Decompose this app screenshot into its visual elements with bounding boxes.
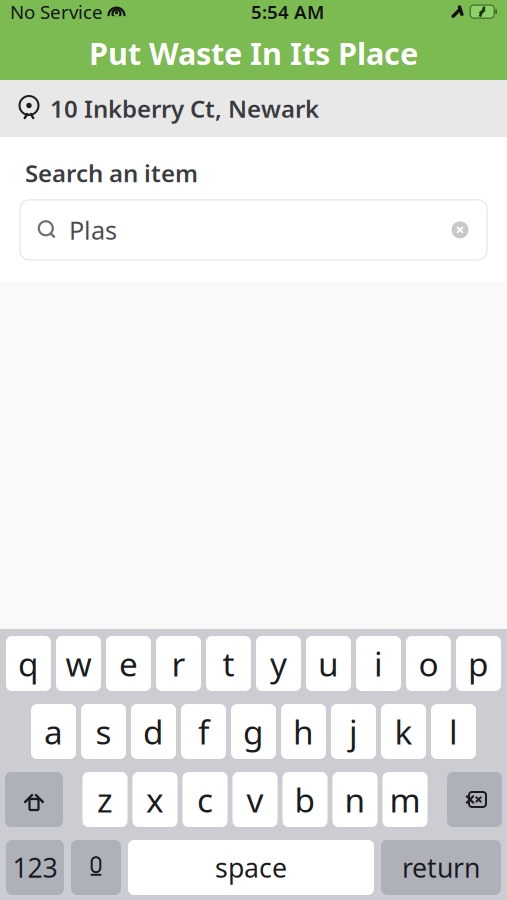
staticText: i — [374, 641, 383, 686]
button[interactable]: space — [128, 840, 374, 895]
staticText: c — [197, 777, 213, 822]
button[interactable]: s — [81, 704, 126, 759]
button[interactable]: n — [332, 772, 377, 827]
staticText: v — [246, 777, 263, 822]
staticText: w — [65, 641, 91, 686]
staticText: b — [294, 777, 315, 822]
staticText: g — [243, 709, 264, 754]
staticText: Plas — [69, 213, 117, 247]
staticText: j — [349, 709, 358, 754]
button[interactable]: Dictate — [71, 840, 121, 895]
staticText: No Service — [10, 0, 103, 24]
staticText: 5:54 AM — [251, 0, 324, 24]
button[interactable]: Plas — [20, 200, 487, 260]
button[interactable]: x — [132, 772, 177, 827]
button[interactable]: d — [131, 704, 176, 759]
staticText: Put Waste In Its Place — [89, 33, 418, 73]
button[interactable]: e — [106, 636, 151, 691]
button[interactable]: h — [281, 704, 326, 759]
staticText: 123 — [12, 850, 57, 885]
button[interactable]: t — [206, 636, 251, 691]
button[interactable]: Delete — [447, 772, 502, 827]
staticText: s — [95, 709, 111, 754]
button[interactable]: f — [181, 704, 226, 759]
staticText: o — [418, 641, 438, 686]
button[interactable]: p — [456, 636, 501, 691]
button[interactable]: j — [331, 704, 376, 759]
staticText: d — [143, 709, 164, 754]
staticText: z — [97, 777, 113, 822]
staticText: m — [389, 777, 420, 822]
button[interactable]: k — [381, 704, 426, 759]
staticText: y — [270, 641, 287, 686]
staticText: space — [215, 850, 287, 885]
button[interactable]: v — [232, 772, 277, 827]
staticText: q — [18, 641, 39, 686]
staticText: n — [344, 777, 365, 822]
staticText: x — [146, 777, 164, 822]
staticText: f — [198, 709, 209, 754]
button[interactable]: 10 Inkberry Ct, Newark — [0, 80, 507, 137]
staticText: t — [222, 641, 234, 686]
staticText: return — [402, 850, 480, 885]
button[interactable]: o — [406, 636, 451, 691]
button[interactable]: c — [182, 772, 227, 827]
staticText: p — [468, 641, 489, 686]
button[interactable]: Shift — [5, 772, 63, 827]
button[interactable]: i — [356, 636, 401, 691]
button[interactable]: return — [381, 840, 501, 895]
staticText: l — [449, 709, 458, 754]
staticText: h — [293, 709, 314, 754]
staticText: a — [44, 709, 63, 754]
button[interactable]: z — [82, 772, 127, 827]
button[interactable]: b — [282, 772, 327, 827]
button[interactable]: u — [306, 636, 351, 691]
staticText: e — [119, 641, 138, 686]
button[interactable]: l — [431, 704, 476, 759]
staticText: k — [394, 709, 412, 754]
staticText: r — [171, 641, 185, 686]
button[interactable]: r — [156, 636, 201, 691]
button[interactable]: a — [31, 704, 76, 759]
button[interactable]: m — [382, 772, 427, 827]
staticText: 10 Inkberry Ct, Newark — [50, 93, 319, 124]
button[interactable]: w — [56, 636, 101, 691]
button[interactable]: 123 — [6, 840, 64, 895]
staticText: Search an item — [25, 157, 198, 189]
button[interactable]: q — [6, 636, 51, 691]
button[interactable]: y — [256, 636, 301, 691]
button[interactable]: g — [231, 704, 276, 759]
staticText: u — [318, 641, 339, 686]
